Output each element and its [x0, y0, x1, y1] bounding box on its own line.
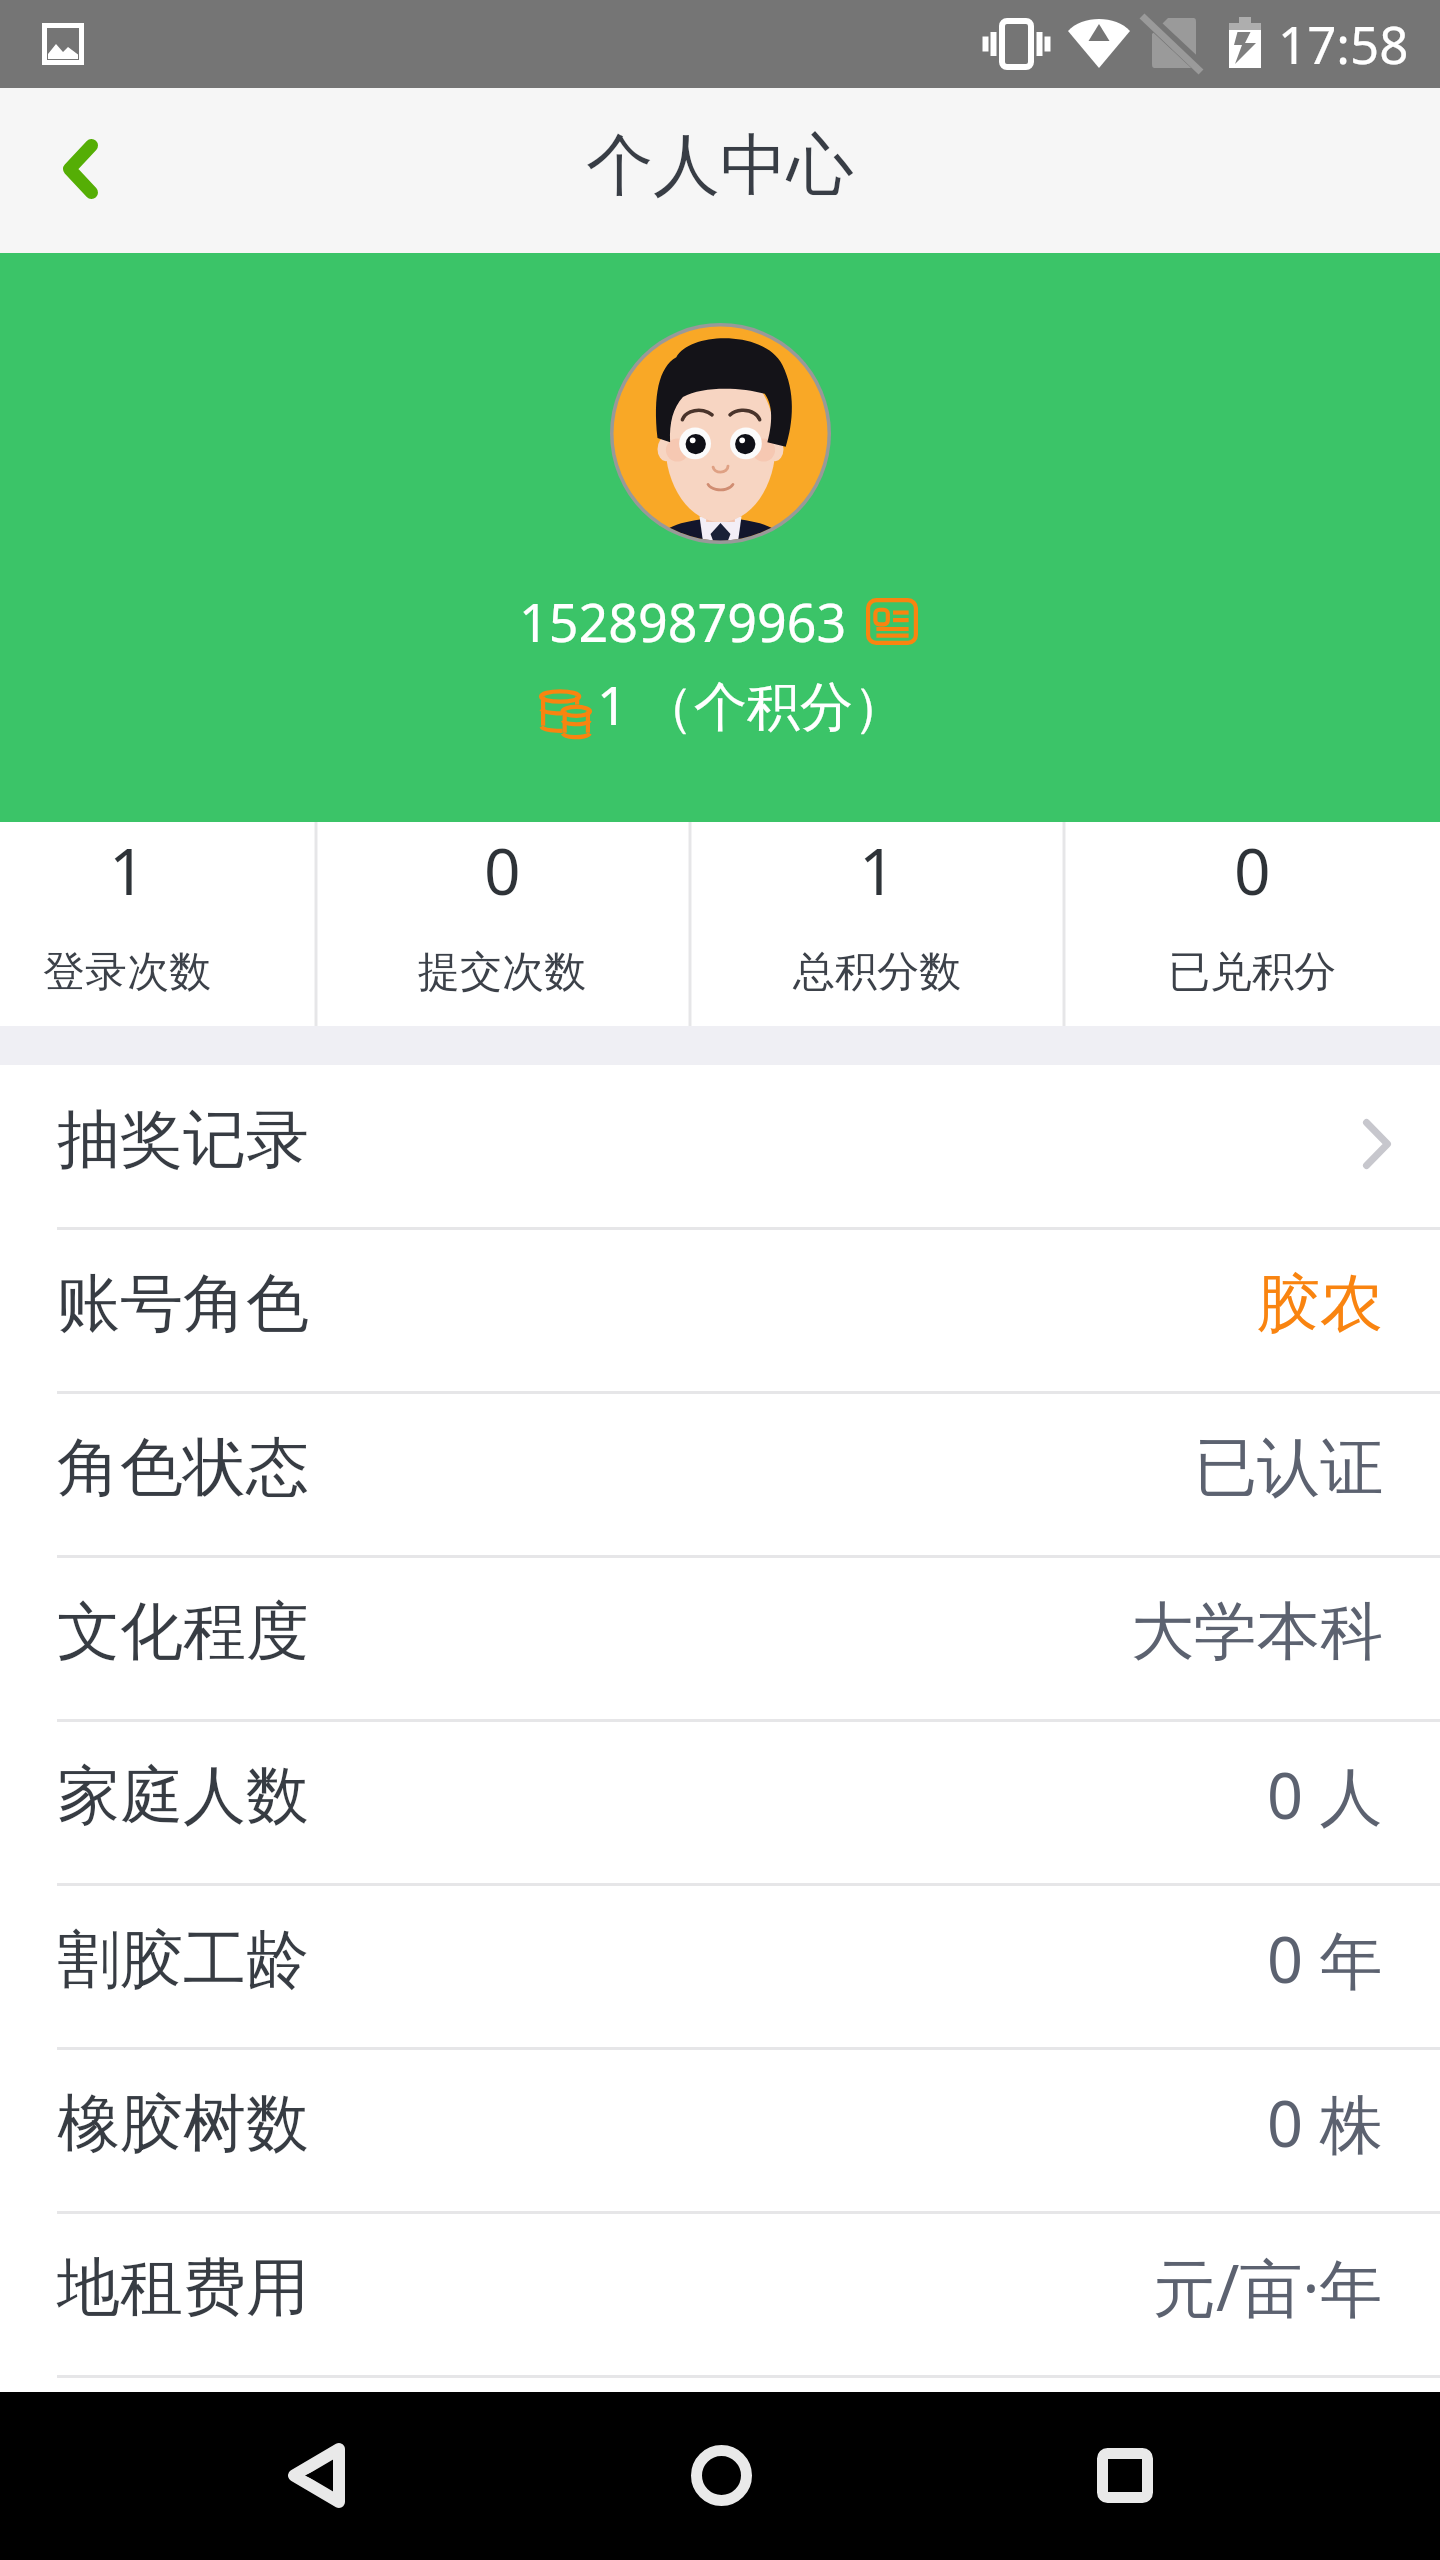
- button[interactable]: 1: [0, 822, 314, 1026]
- button[interactable]: Recents: [1045, 2395, 1205, 2555]
- button[interactable]: 家庭人数: [0, 1721, 1440, 1885]
- staticText: 15289879963: [519, 586, 847, 657]
- staticText: 1: [859, 827, 896, 914]
- staticText: 0: [1234, 827, 1271, 914]
- staticText: 登录次数: [43, 946, 211, 999]
- button[interactable]: 抽奖记录: [0, 1065, 1440, 1229]
- staticText: 橡胶树数: [57, 2084, 309, 2163]
- button[interactable]: Back: [0, 88, 160, 253]
- staticText: 账号角色: [57, 1264, 309, 1343]
- staticText: 总积分数: [793, 946, 961, 999]
- staticText: 17:58: [1278, 9, 1409, 78]
- staticText: 抽奖记录: [57, 1100, 309, 1179]
- staticText: 0 年: [1267, 1916, 1383, 2002]
- button[interactable]: 文化程度: [0, 1557, 1440, 1721]
- staticText: 大学本科: [1131, 1592, 1383, 1671]
- staticText: 提交次数: [418, 946, 586, 999]
- button[interactable]: Back: [236, 2395, 396, 2555]
- button[interactable]: 1: [690, 822, 1064, 1026]
- staticText: 0: [484, 827, 521, 914]
- staticText: 文化程度: [57, 1592, 309, 1671]
- button[interactable]: ID card: [866, 598, 918, 645]
- staticText: 个人中心: [586, 123, 854, 207]
- button[interactable]: 割胶工龄: [0, 1885, 1440, 2049]
- button[interactable]: 0: [1065, 822, 1439, 1026]
- button[interactable]: 橡胶树数: [0, 2049, 1440, 2213]
- staticText: 1: [109, 827, 146, 914]
- staticText: 角色状态: [57, 1428, 309, 1507]
- staticText: 地租费用: [57, 2248, 309, 2327]
- staticText: 胶农: [1257, 1264, 1383, 1343]
- button[interactable]: 角色状态: [0, 1393, 1440, 1557]
- button[interactable]: Home: [641, 2395, 801, 2555]
- staticText: 元/亩·年: [1153, 2244, 1383, 2330]
- staticText: 0 人: [1267, 1752, 1383, 1838]
- staticText: 割胶工龄: [57, 1920, 309, 1999]
- staticText: 已认证: [1194, 1428, 1383, 1507]
- button[interactable]: 账号角色: [0, 1229, 1440, 1393]
- staticText: 已兑积分: [1168, 946, 1336, 999]
- button[interactable]: Avatar: [610, 323, 831, 544]
- button[interactable]: 0: [315, 822, 689, 1026]
- staticText: 1 （个积分）: [597, 668, 907, 740]
- staticText: 0 株: [1267, 2080, 1383, 2166]
- staticText: 家庭人数: [57, 1756, 309, 1835]
- button[interactable]: 地租费用: [0, 2213, 1440, 2377]
